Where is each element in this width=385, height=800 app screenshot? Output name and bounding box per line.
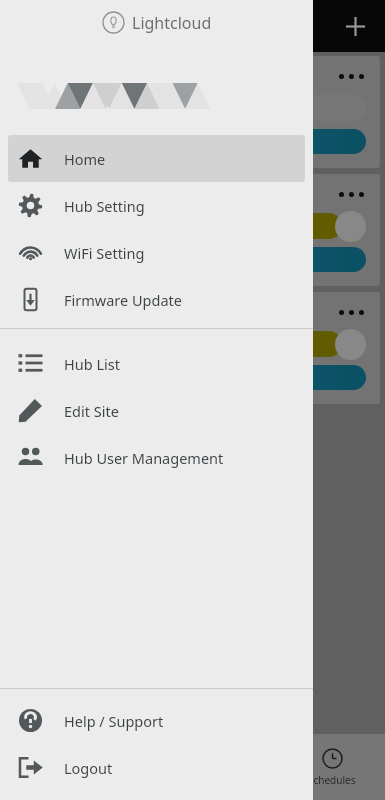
button[interactable]: More options [339,192,364,197]
staticText: Edit Site [64,401,119,421]
staticText: Help / Support [64,711,164,731]
button[interactable]: WiFi Setting [8,229,305,276]
staticText: WiFi Setting [64,243,145,263]
button[interactable]: More options [339,310,364,315]
button[interactable]: Home [8,135,305,182]
staticText: Home [64,149,106,169]
staticText: Hub Setting [64,196,145,216]
button[interactable]: More options [5,174,380,286]
staticText: Lightcloud [132,12,212,34]
staticText: Hub User Management [64,448,224,468]
button[interactable]: Devices [23,744,71,791]
button[interactable]: Hub List [8,340,305,387]
button[interactable]: More options [339,74,364,79]
staticText: Devices [29,773,65,787]
staticText: Hub List [64,354,120,374]
button[interactable]: Firmware Update [8,276,305,323]
button[interactable]: Lightcloud [102,11,212,34]
button[interactable]: Hub User Management [8,434,305,481]
button[interactable]: Help / Support [8,697,305,744]
staticText: Firmware Update [64,290,182,310]
button[interactable]: More options [5,292,380,404]
button[interactable]: Schedules [302,744,362,791]
staticText: Schedules [308,773,356,787]
button[interactable]: Logout [8,744,305,791]
staticText: Logout [64,758,113,778]
button[interactable]: Add device [337,8,373,44]
button[interactable]: Hub Setting [8,182,305,229]
button[interactable]: More options [5,56,380,168]
button[interactable]: Edit Site [8,387,305,434]
